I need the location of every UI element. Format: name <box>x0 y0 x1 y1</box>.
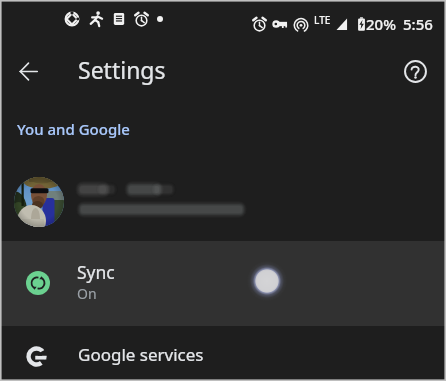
staticText: 5:56 <box>403 14 433 34</box>
staticText: Sync <box>77 260 115 284</box>
staticText: 20% <box>366 14 396 34</box>
staticText: You and Google <box>17 119 130 139</box>
button[interactable]: Google services <box>0 326 446 381</box>
staticText: Google services <box>78 343 204 366</box>
button[interactable] <box>0 162 446 241</box>
button[interactable]: Back <box>10 53 47 90</box>
button[interactable]: Sync <box>0 241 446 326</box>
staticText: Settings <box>78 54 166 85</box>
staticText: LTE <box>314 13 331 27</box>
button[interactable]: Help <box>396 52 434 90</box>
staticText: On <box>77 284 97 303</box>
